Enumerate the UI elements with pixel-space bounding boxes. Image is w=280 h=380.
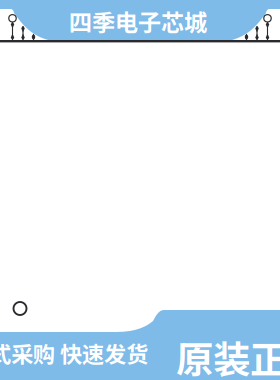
staticText: 式采购 快速发货 [0, 337, 148, 369]
staticText: 四季电子芯城 [69, 4, 207, 38]
staticText: 原装正 [176, 330, 280, 380]
